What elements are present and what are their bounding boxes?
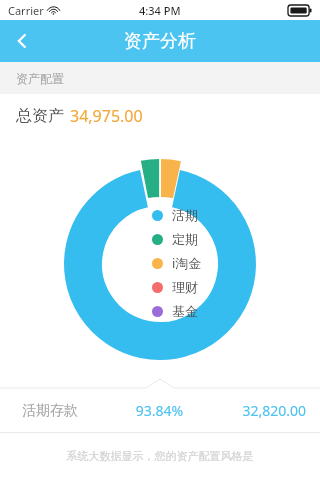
button[interactable]: 活期存款 [0, 388, 320, 432]
staticText: 基金 [172, 303, 198, 319]
button[interactable]: i淘金 [152, 251, 202, 275]
button[interactable]: 定期 [152, 227, 198, 251]
staticText: 资产分析 [124, 30, 196, 53]
staticText: 系统大数据显示，您的资产配置风格是 [0, 449, 320, 463]
button[interactable]: Back [0, 20, 44, 62]
staticText: Carrier [8, 3, 44, 18]
staticText: i淘金 [172, 254, 202, 272]
staticText: 理财 [172, 279, 198, 295]
staticText: 32,820.00 [213, 401, 306, 420]
staticText: 93.84% [106, 401, 213, 420]
staticText: 34,975.00 [70, 105, 143, 127]
button[interactable]: 活期 [152, 203, 198, 227]
button[interactable]: 基金 [152, 299, 198, 323]
staticText: 资产配置 [16, 71, 64, 86]
staticText: 总资产 [16, 106, 64, 126]
staticText: 4:34 PM [139, 3, 181, 18]
button[interactable]: 理财 [152, 275, 198, 299]
staticText: 定期 [172, 231, 198, 247]
staticText: 活期存款 [22, 402, 106, 420]
staticText: 活期 [172, 207, 198, 223]
